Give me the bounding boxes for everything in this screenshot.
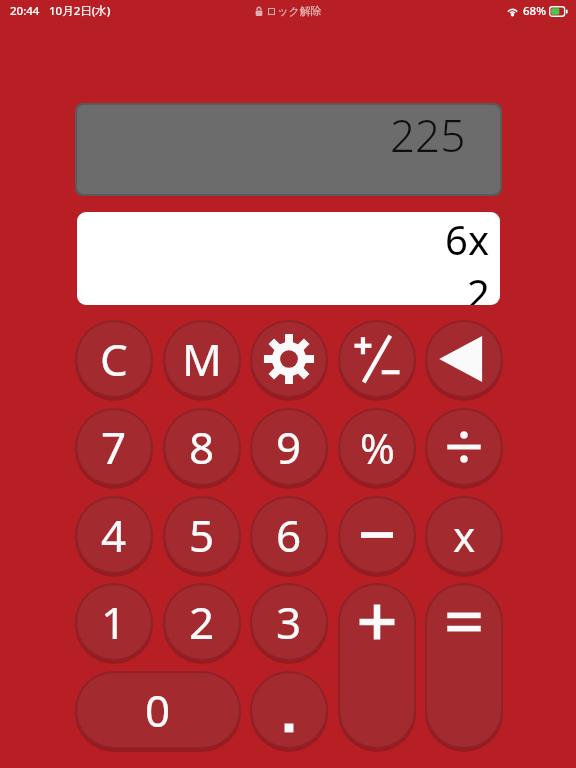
staticText: C [100,329,128,389]
button[interactable]: Settings [250,320,328,398]
staticText: 20:44 [10,3,40,19]
button[interactable]: 5 [163,496,241,574]
button[interactable]: 7 [75,408,153,486]
button[interactable]: Minus [338,496,416,574]
staticText: 2 [467,266,490,305]
button[interactable]: x [425,496,503,574]
staticText: M [182,329,222,389]
button[interactable]: 2 [163,583,241,661]
button[interactable]: % [338,408,416,486]
button[interactable]: Decimal point [250,671,328,749]
button[interactable]: Divide [425,408,503,486]
button[interactable]: 1 [75,583,153,661]
button[interactable]: M [163,320,241,398]
button[interactable]: Plus [338,583,416,749]
staticText: 0 [145,680,171,740]
staticText: 225 [390,105,466,165]
button[interactable]: Toggle sign [338,320,416,398]
button[interactable]: 225 [77,105,500,194]
staticText: 3 [276,592,302,652]
staticText: ロック解除 [266,4,322,18]
button[interactable]: 6 [250,496,328,574]
staticText: x [453,507,476,564]
button[interactable]: 6x [77,212,500,305]
staticText: 10月2日(水) [49,3,111,19]
button[interactable]: Equals [425,583,503,749]
staticText: 6 [276,505,302,565]
staticText: % [360,419,395,476]
button[interactable]: 9 [250,408,328,486]
button[interactable]: Backspace [425,320,503,398]
staticText: 1 [101,592,127,652]
staticText: 68% [523,3,546,19]
staticText: 4 [101,505,127,565]
staticText: 7 [101,417,127,477]
button[interactable]: C [75,320,153,398]
staticText: 8 [189,417,215,477]
button[interactable]: 8 [163,408,241,486]
button[interactable]: 0 [75,671,241,749]
staticText: 5 [189,505,215,565]
staticText: 9 [276,417,302,477]
staticText: 6x [445,212,490,266]
staticText: 2 [189,592,215,652]
button[interactable]: 4 [75,496,153,574]
button[interactable]: 3 [250,583,328,661]
